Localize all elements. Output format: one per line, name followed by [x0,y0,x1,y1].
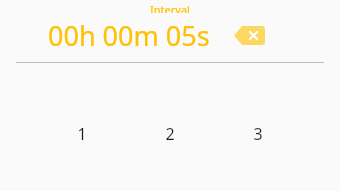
staticText: Interval [150,2,190,13]
button[interactable]: 3 [214,123,302,145]
button[interactable]: 2 [126,123,214,145]
staticText: 2 [165,123,175,145]
staticText: 3 [253,123,263,145]
button[interactable]: Backspace [234,26,265,45]
staticText: 00h 00m 05s [48,17,210,54]
button[interactable]: 1 [38,123,126,145]
staticText: 1 [77,123,87,145]
